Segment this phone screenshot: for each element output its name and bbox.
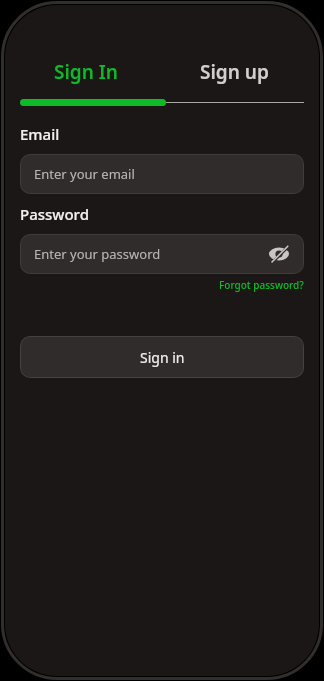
staticText: Enter your password: [34, 245, 161, 263]
button[interactable]: Sign up: [166, 59, 304, 85]
button[interactable]: Sign in: [20, 336, 304, 378]
button[interactable]: Forgot password?: [219, 278, 304, 292]
button[interactable]: Enter your password: [20, 234, 304, 274]
staticText: Email: [20, 124, 60, 144]
staticText: Enter your email: [34, 165, 135, 183]
staticText: Sign in: [140, 348, 185, 367]
staticText: Password: [20, 204, 89, 224]
staticText: Forgot password?: [219, 278, 304, 292]
staticText: Sign up: [200, 59, 269, 85]
button[interactable]: Enter your email: [20, 154, 304, 194]
staticText: Sign In: [54, 59, 118, 85]
button[interactable]: Sign In: [20, 59, 166, 85]
